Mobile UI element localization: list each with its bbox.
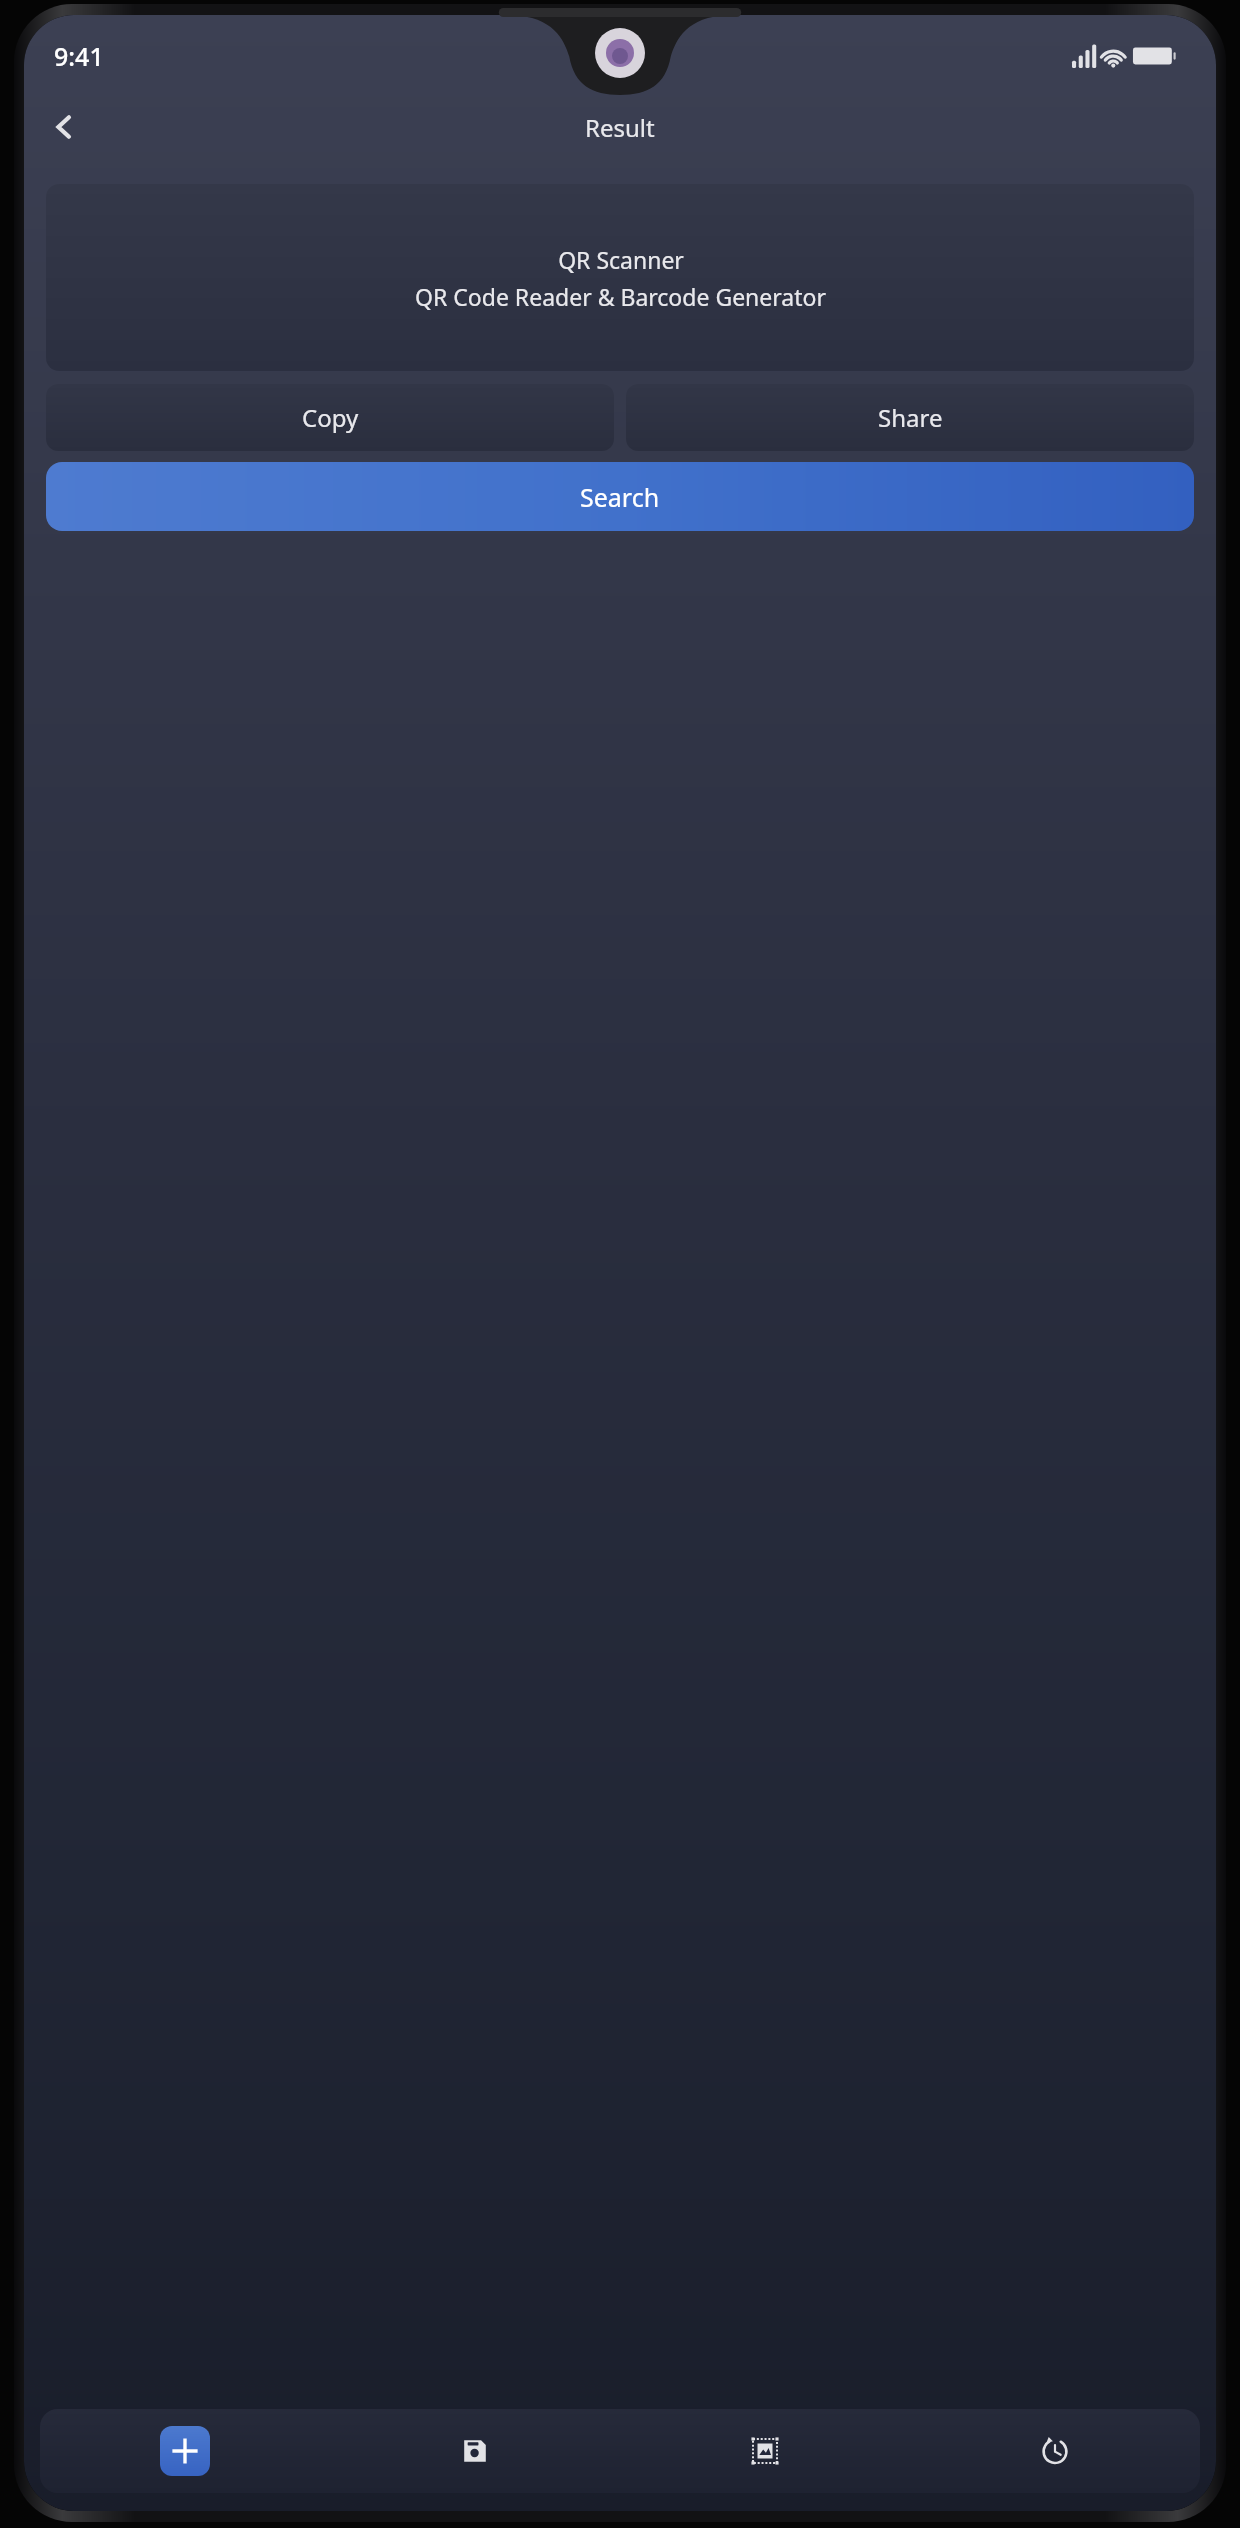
button[interactable]: Search [46, 462, 1194, 531]
staticText: QR Scanner [558, 244, 684, 275]
button[interactable]: History [910, 2409, 1200, 2493]
button[interactable]: QR Scanner [46, 184, 1194, 371]
staticText: 9:41 [54, 39, 104, 73]
button[interactable]: Back [36, 98, 94, 156]
staticText: Share [878, 401, 943, 434]
staticText: Search [580, 480, 660, 514]
button[interactable]: Scan image [620, 2409, 910, 2493]
button[interactable]: Copy [46, 384, 614, 451]
staticText: Result [585, 111, 655, 144]
button[interactable]: Save [330, 2409, 620, 2493]
button[interactable]: Share [626, 384, 1194, 451]
staticText: Copy [302, 401, 359, 434]
staticText: QR Code Reader & Barcode Generator [415, 281, 826, 312]
button[interactable]: Create [160, 2426, 210, 2476]
